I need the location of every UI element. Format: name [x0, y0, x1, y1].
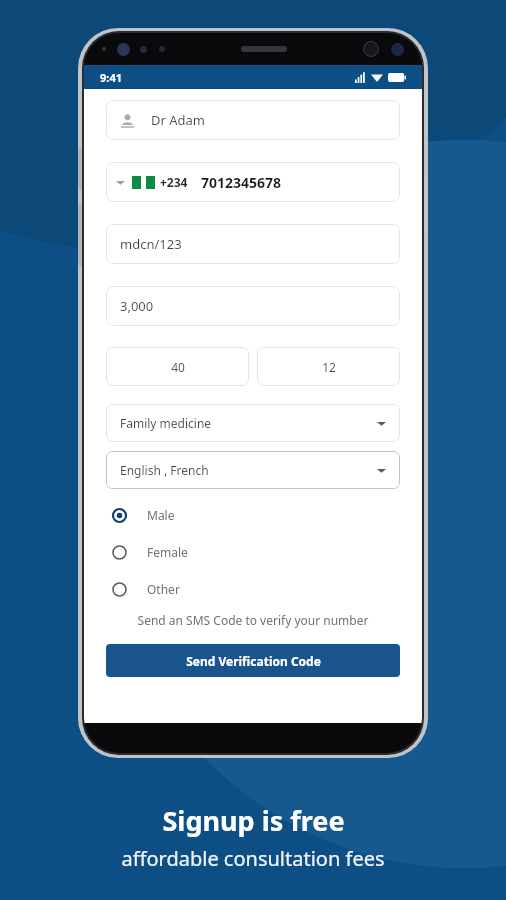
- button[interactable]: English , French: [106, 451, 400, 489]
- staticText: mdcn/123: [120, 235, 182, 253]
- staticText: Send an SMS Code to verify your number: [106, 612, 400, 628]
- staticText: 40: [171, 359, 185, 375]
- staticText: +234: [160, 174, 188, 190]
- staticText: Other: [147, 581, 180, 597]
- staticText: 3,000: [120, 297, 154, 315]
- staticText: affordable consultation fees: [121, 845, 385, 872]
- button[interactable]: Send Verification Code: [106, 644, 400, 677]
- button[interactable]: 12: [257, 347, 400, 386]
- staticText: Family medicine: [120, 415, 212, 431]
- button[interactable]: Male: [106, 504, 400, 526]
- button[interactable]: 3,000: [106, 286, 400, 326]
- staticText: Female: [147, 544, 188, 560]
- button[interactable]: 40: [106, 347, 249, 386]
- button[interactable]: Family medicine: [106, 404, 400, 442]
- staticText: Dr Adam: [151, 111, 205, 129]
- staticText: English , French: [120, 462, 209, 478]
- button[interactable]: mdcn/123: [106, 224, 400, 264]
- staticText: 12: [322, 359, 336, 375]
- staticText: Male: [147, 507, 175, 523]
- button[interactable]: Female: [106, 541, 400, 563]
- button[interactable]: +234: [106, 162, 400, 202]
- staticText: Signup is free: [162, 802, 345, 839]
- button[interactable]: Dr Adam: [106, 100, 400, 140]
- button[interactable]: Other: [106, 578, 400, 600]
- staticText: 9:41: [100, 70, 122, 85]
- staticText: 7012345678: [201, 173, 282, 192]
- staticText: Send Verification Code: [186, 653, 321, 669]
